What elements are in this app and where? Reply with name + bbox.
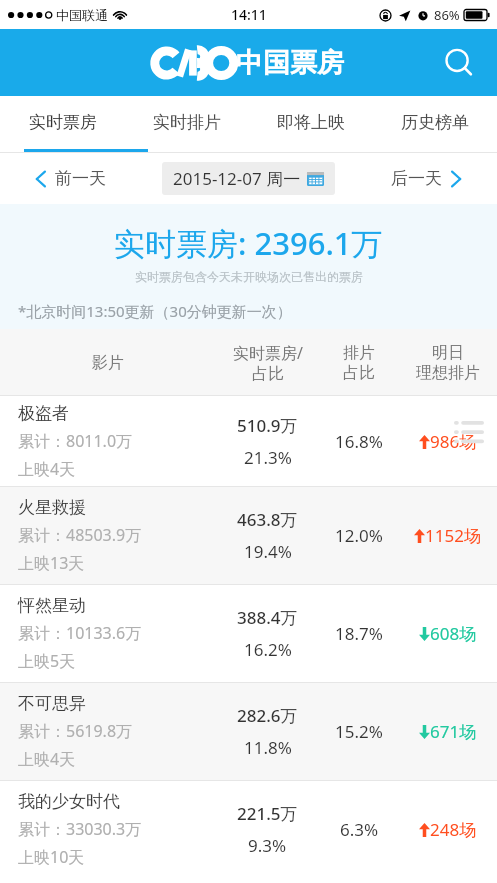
staticText: 即将上映 <box>277 112 345 133</box>
button[interactable]: 历史榜单 <box>373 96 497 149</box>
button[interactable]: 我的少女时代 <box>0 781 497 878</box>
staticText: 我的少女时代 <box>18 791 120 812</box>
staticText: 后一天 <box>391 168 442 189</box>
staticText: 极盗者 <box>18 403 69 424</box>
staticText: 理想排片 <box>416 363 480 383</box>
staticText: 中国联通 <box>56 7 108 23</box>
staticText: 248场 <box>430 818 477 841</box>
button[interactable]: 2015-12-07 周一 <box>162 162 335 195</box>
button[interactable]: 不可思异 <box>0 683 497 780</box>
staticText: 实时排片 <box>153 112 221 133</box>
staticText: 671场 <box>430 720 477 743</box>
staticText: 86% <box>434 6 460 24</box>
staticText: 累计：5619.8万 <box>18 720 133 742</box>
staticText: 2015-12-07 周一 <box>173 167 301 190</box>
staticText: 14:11 <box>231 5 267 24</box>
button[interactable]: List menu <box>451 414 487 450</box>
staticText: 21.3% <box>244 446 292 469</box>
button[interactable]: 实时票房 <box>0 96 125 149</box>
staticText: 中国票房 <box>236 46 344 80</box>
button[interactable]: 即将上映 <box>249 96 373 149</box>
staticText: 16.2% <box>244 638 292 661</box>
button[interactable]: 极盗者 <box>0 396 497 486</box>
staticText: 上映10天 <box>18 846 85 868</box>
staticText: 16.8% <box>335 430 383 453</box>
staticText: 上映13天 <box>18 552 85 574</box>
staticText: 怦然星动 <box>18 595 86 616</box>
staticText: 510.9万 <box>237 414 298 437</box>
staticText: 463.8万 <box>237 508 298 531</box>
staticText: 12.0% <box>335 524 383 547</box>
staticText: 实时票房/ <box>233 342 303 364</box>
staticText: 占比 <box>343 363 375 383</box>
button[interactable]: 火星救援 <box>0 487 497 584</box>
staticText: 影片 <box>92 353 124 373</box>
staticText: 上映5天 <box>18 650 76 672</box>
staticText: 累计：10133.6万 <box>18 622 142 644</box>
button[interactable]: Search <box>437 41 481 85</box>
staticText: 15.2% <box>335 720 383 743</box>
staticText: 282.6万 <box>237 704 298 727</box>
staticText: 实时票房包含今天未开映场次已售出的票房 <box>135 269 363 284</box>
staticText: 1152场 <box>425 524 481 547</box>
staticText: 火星救援 <box>18 497 86 518</box>
staticText: 221.5万 <box>237 802 298 825</box>
staticText: 11.8% <box>244 736 292 759</box>
staticText: 实时票房 <box>29 112 97 133</box>
staticText: 9.3% <box>248 834 287 857</box>
staticText: 累计：8011.0万 <box>18 430 133 452</box>
staticText: 上映4天 <box>18 748 76 770</box>
staticText: 排片 <box>343 343 375 363</box>
staticText: 占比 <box>252 364 284 384</box>
staticText: 前一天 <box>55 168 106 189</box>
staticText: 不可思异 <box>18 693 86 714</box>
button[interactable]: 怦然星动 <box>0 585 497 682</box>
staticText: *北京时间13:50更新（30分钟更新一次） <box>18 301 292 321</box>
staticText: 实时票房: 2396.1万 <box>114 222 383 264</box>
staticText: 累计：48503.9万 <box>18 524 142 546</box>
staticText: 历史榜单 <box>401 112 469 133</box>
button[interactable]: 实时排片 <box>125 96 249 149</box>
button[interactable]: 后一天 <box>391 168 463 189</box>
staticText: 388.4万 <box>237 606 298 629</box>
staticText: 608场 <box>430 622 477 645</box>
staticText: 累计：33030.3万 <box>18 818 142 840</box>
staticText: 明日 <box>432 343 464 363</box>
staticText: 19.4% <box>244 540 292 563</box>
staticText: 18.7% <box>335 622 383 645</box>
staticText: 上映4天 <box>18 458 76 480</box>
staticText: 986场 <box>430 430 477 453</box>
staticText: 6.3% <box>340 818 379 841</box>
button[interactable]: 前一天 <box>34 168 106 189</box>
